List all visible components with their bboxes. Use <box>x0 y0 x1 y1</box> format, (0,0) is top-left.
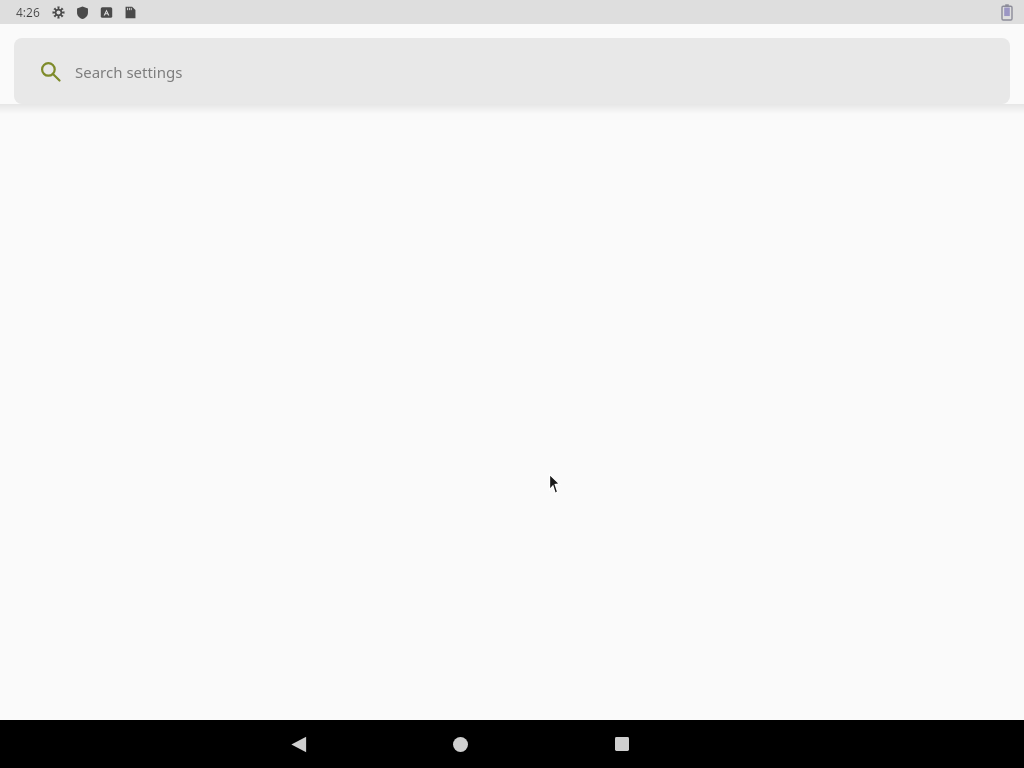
button[interactable]: Recent apps <box>598 720 646 768</box>
staticText: Search settings <box>75 62 183 82</box>
button[interactable]: Home <box>436 720 484 768</box>
staticText: 4:26 <box>16 4 40 20</box>
button[interactable]: Search settings <box>14 38 1010 104</box>
button[interactable]: Back <box>274 720 322 768</box>
